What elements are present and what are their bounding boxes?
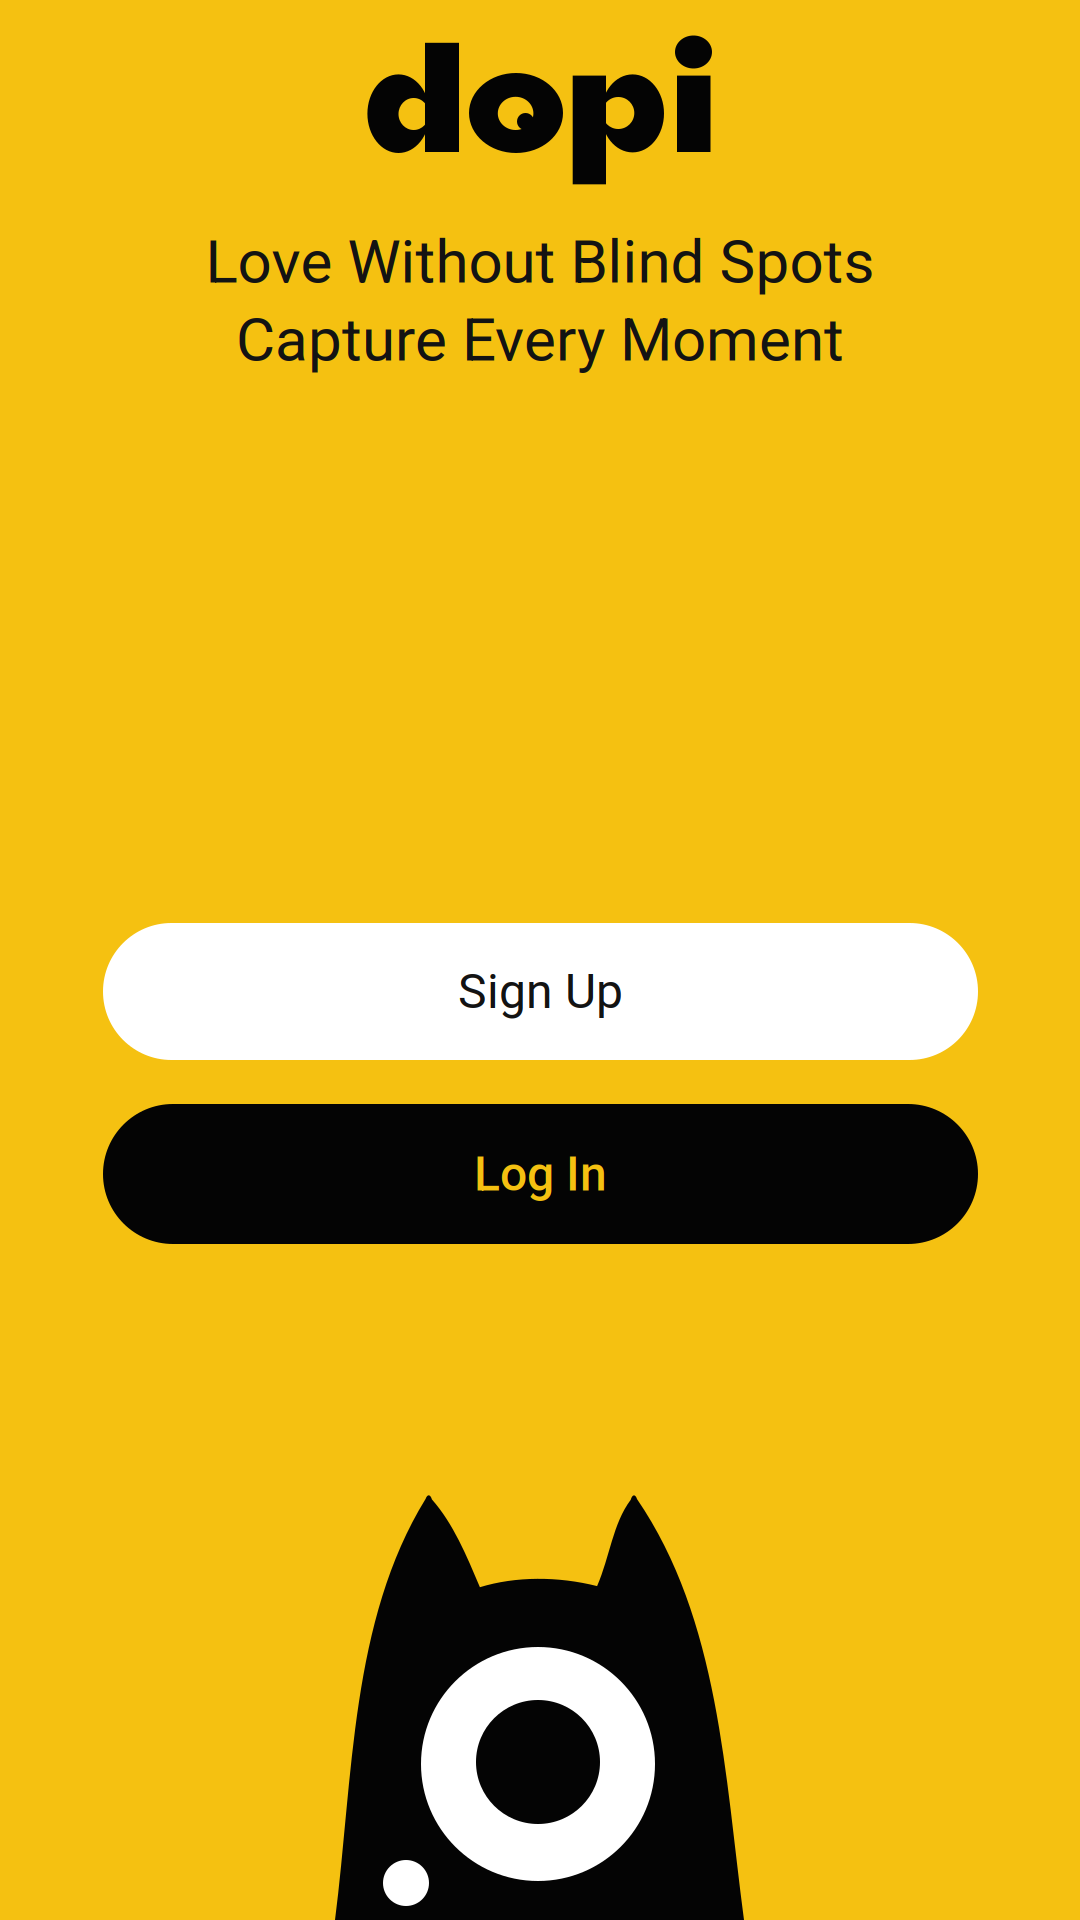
staticText: Log In: [474, 1146, 607, 1202]
button[interactable]: Sign Up: [103, 923, 978, 1060]
staticText: Capture Every Moment: [236, 305, 844, 375]
staticText: Love Without Blind Spots: [205, 227, 874, 297]
button[interactable]: Log In: [103, 1104, 978, 1244]
staticText: Sign Up: [458, 963, 623, 1020]
